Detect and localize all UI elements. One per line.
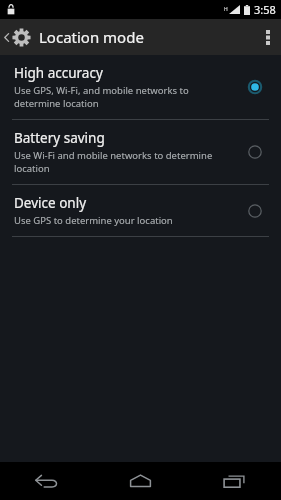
- button[interactable]: Not selected: [243, 140, 267, 164]
- button[interactable]: Selected: [243, 75, 267, 99]
- button[interactable]: More options: [255, 19, 281, 55]
- button[interactable]: High accuracy: [0, 55, 281, 119]
- staticText: Use Wi-Fi and mobile networks to determi…: [14, 149, 213, 175]
- staticText: Battery saving: [14, 129, 105, 147]
- staticText: High accuracy: [14, 64, 103, 82]
- button[interactable]: Location mode: [0, 19, 281, 55]
- button[interactable]: Back: [0, 462, 93, 500]
- staticText: 3:58: [254, 2, 276, 17]
- staticText: H: [224, 6, 228, 13]
- staticText: Location mode: [39, 27, 144, 47]
- staticText: Use GPS, Wi-Fi, and mobile networks to d…: [14, 84, 189, 110]
- button[interactable]: Battery saving: [0, 120, 281, 184]
- button[interactable]: Device only: [0, 185, 281, 236]
- staticText: Device only: [14, 194, 87, 212]
- button[interactable]: Recent apps: [187, 462, 281, 500]
- staticText: Use GPS to determine your location: [14, 214, 173, 227]
- button[interactable]: Not selected: [243, 199, 267, 223]
- button[interactable]: Home: [93, 462, 187, 500]
